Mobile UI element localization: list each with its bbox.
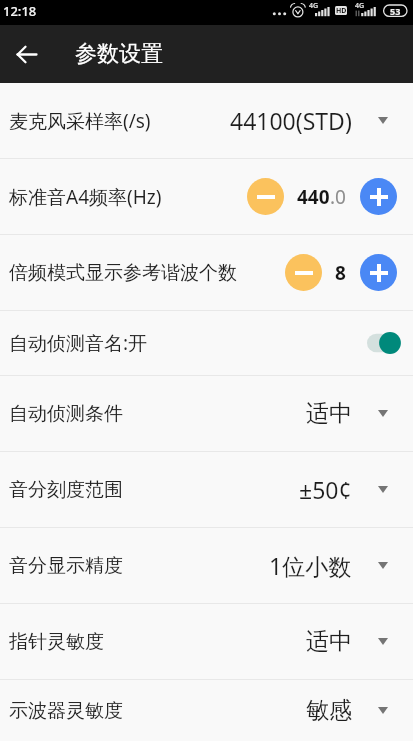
button[interactable]: Decrease <box>285 254 322 291</box>
staticText: 12:18 <box>3 2 37 20</box>
staticText: 音分显示精度 <box>9 554 123 578</box>
staticText: 敏感 <box>306 696 352 725</box>
button[interactable]: Increase <box>360 178 397 215</box>
staticText: 音分刻度范围 <box>9 478 123 502</box>
button[interactable]: Increase <box>360 254 397 291</box>
button[interactable]: 音分显示精度 <box>0 528 413 603</box>
staticText: 适中 <box>306 399 352 428</box>
staticText: 适中 <box>306 627 352 656</box>
staticText: 指针灵敏度 <box>9 630 104 654</box>
button[interactable]: 自动侦测条件 <box>0 376 413 451</box>
staticText: 自动侦测条件 <box>9 402 123 426</box>
staticText: 麦克风采样率(/s) <box>9 108 151 134</box>
staticText: 1位小数 <box>269 550 352 581</box>
staticText: 53 <box>390 5 401 17</box>
staticText: 倍频模式显示参考谐波个数 <box>9 261 237 285</box>
staticText: 示波器灵敏度 <box>9 699 123 723</box>
button[interactable]: Back <box>0 25 54 83</box>
button[interactable]: 音分刻度范围 <box>0 452 413 527</box>
button[interactable]: Auto detect note name toggle <box>367 332 401 354</box>
staticText: .0 <box>330 184 346 210</box>
staticText: ±50¢ <box>299 474 352 505</box>
staticText: 44100(STD) <box>230 105 352 136</box>
button[interactable]: 指针灵敏度 <box>0 604 413 679</box>
button[interactable]: 自动侦测音名:开 <box>0 311 413 375</box>
staticText: 标准音A4频率(Hz) <box>9 184 162 210</box>
staticText: 8 <box>335 260 346 286</box>
button[interactable]: 麦克风采样率(/s) <box>0 83 413 158</box>
staticText: 4G <box>355 1 365 11</box>
staticText: 参数设置 <box>75 40 163 68</box>
staticText: HD <box>336 6 347 15</box>
staticText: 440 <box>297 184 330 210</box>
staticText: 4G <box>309 1 319 11</box>
button[interactable]: Decrease <box>247 178 284 215</box>
button[interactable]: 示波器灵敏度 <box>0 680 413 741</box>
staticText: 自动侦测音名:开 <box>9 330 148 356</box>
